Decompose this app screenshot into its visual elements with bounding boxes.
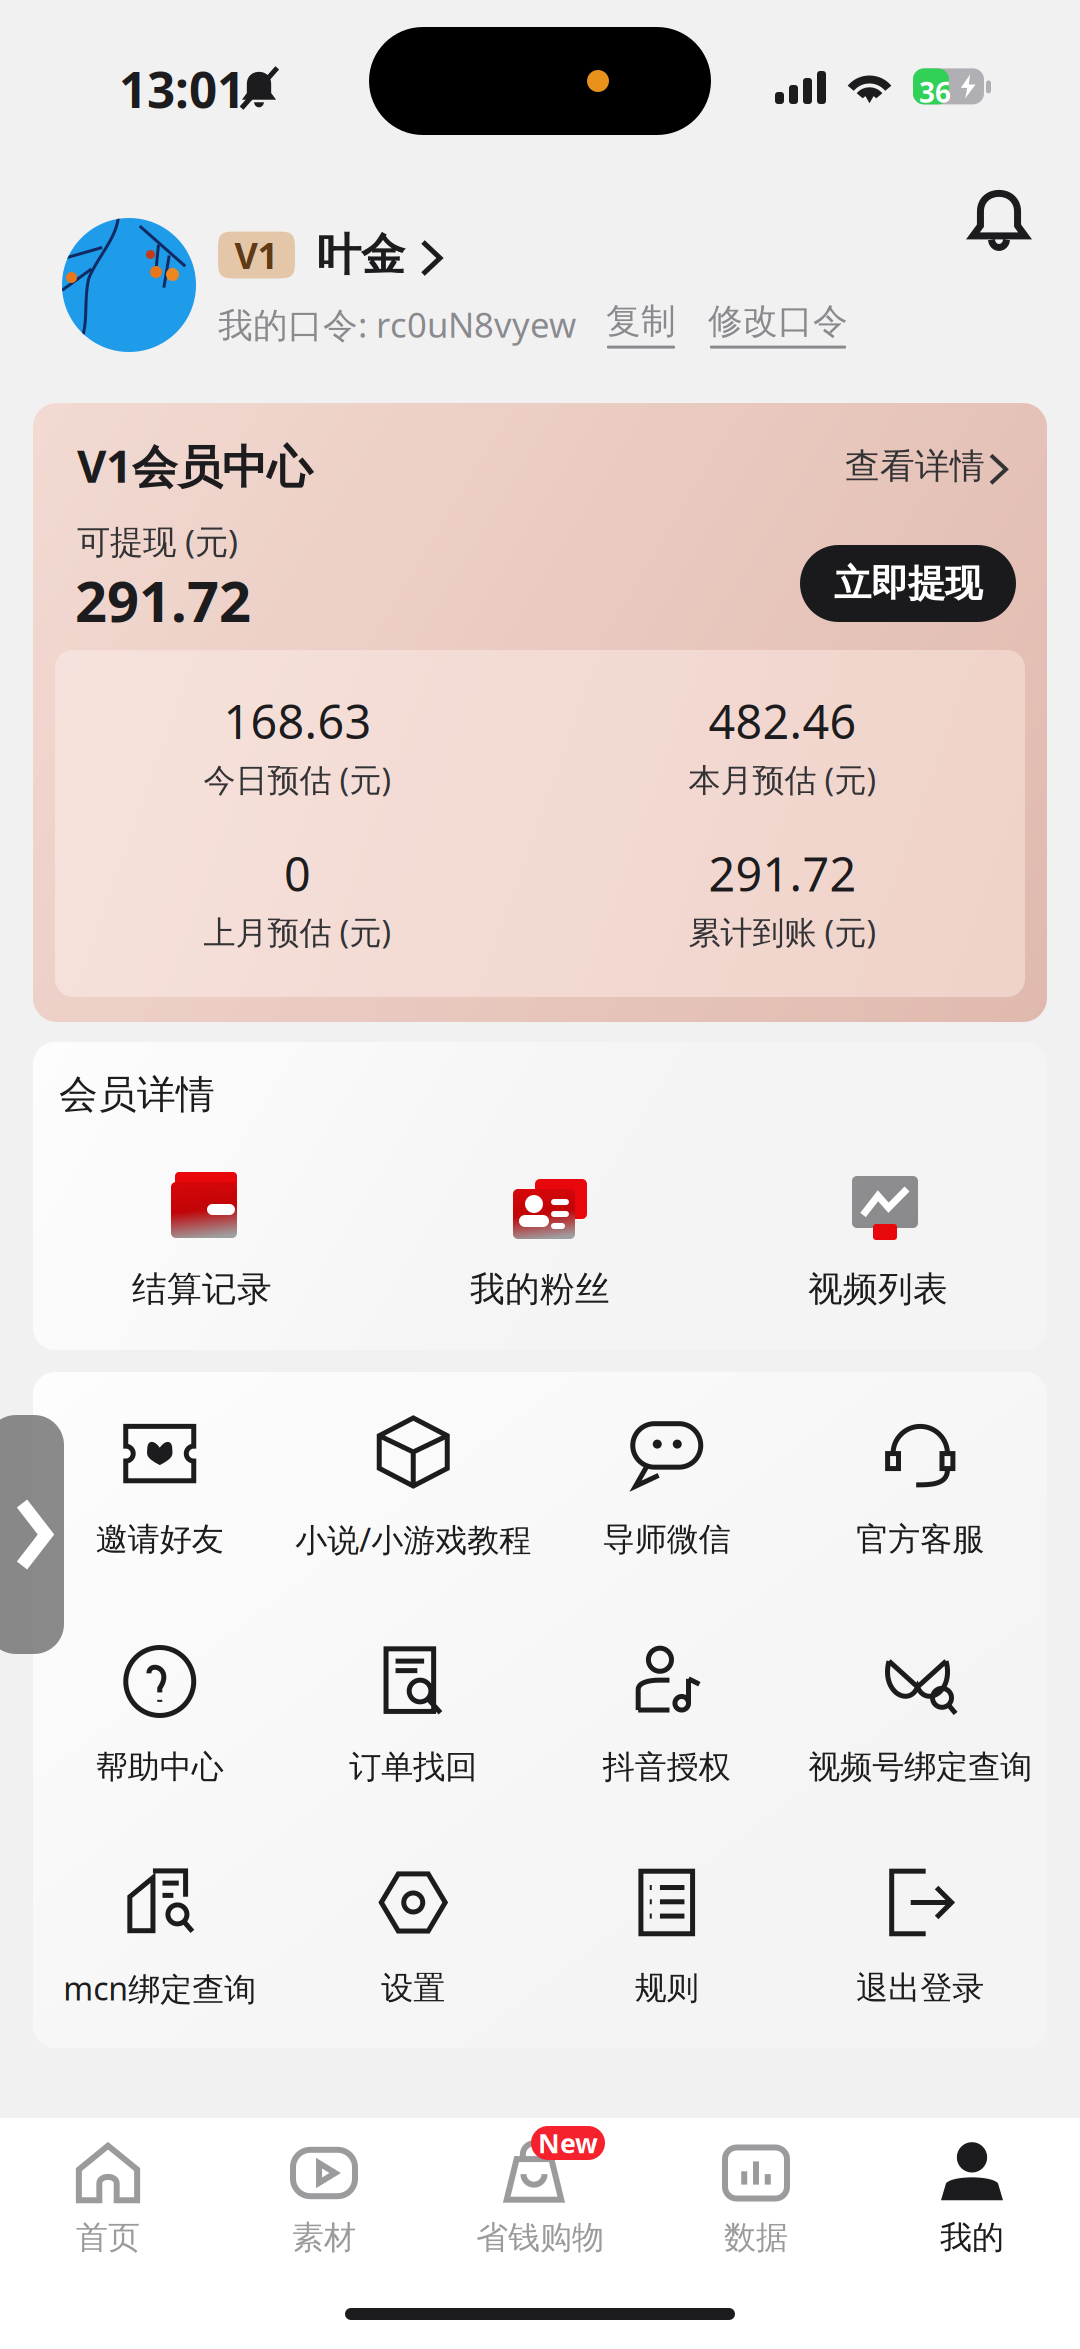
button[interactable]: 复制 [606,300,676,349]
staticText: 我的粉丝 [470,1268,610,1311]
button[interactable]: 官方客服 [793,1420,1047,1559]
staticText: 我的 [940,2218,1004,2257]
button[interactable]: 结算记录 [33,1160,371,1311]
staticText: 168.63 [223,690,371,752]
button[interactable]: 首页 [0,2144,216,2257]
staticText: 退出登录 [856,1968,984,2008]
staticText: 修改口令 [708,300,848,343]
button[interactable]: 设置 [286,1868,540,2008]
button[interactable]: 抖音授权 [540,1647,793,1787]
staticText: 上月预估 (元) [203,910,391,953]
staticText: 官方客服 [856,1520,984,1559]
staticText: 订单找回 [349,1747,477,1787]
button[interactable]: 立即提现 [800,545,1016,622]
button[interactable]: New [432,2144,648,2257]
staticText: 0 [284,842,311,904]
staticText: 36 [919,73,951,111]
staticText: 数据 [724,2218,788,2257]
button[interactable]: 邀请好友 [33,1420,286,1559]
staticText: 设置 [381,1968,445,2008]
staticText: 帮助中心 [96,1747,224,1787]
staticText: 会员详情 [59,1071,215,1118]
staticText: V1 [234,231,278,279]
staticText: 导师微信 [603,1520,731,1559]
staticText: 规则 [635,1968,699,2008]
button[interactable]: 数据 [648,2144,864,2257]
staticText: 抖音授权 [603,1747,731,1787]
button[interactable]: 退出登录 [793,1868,1047,2008]
staticText: 可提现 (元) [77,519,238,563]
button[interactable]: 帮助中心 [33,1647,286,1787]
button[interactable]: Open side panel [0,1415,64,1654]
staticText: 邀请好友 [96,1520,224,1559]
staticText: 视频号绑定查询 [808,1747,1032,1787]
button[interactable]: Notifications [970,186,1028,250]
button[interactable]: 我的粉丝 [371,1160,709,1311]
button[interactable]: mcn绑定查询 [33,1867,286,2009]
staticText: 立即提现 [834,561,982,606]
staticText: 291.72 [708,842,856,904]
button[interactable]: 规则 [540,1868,793,2008]
staticText: New [538,2125,598,2161]
button[interactable]: 修改口令 [708,300,848,349]
staticText: 今日预估 (元) [203,758,391,800]
button[interactable]: 导师微信 [540,1420,793,1559]
button[interactable]: 小说/小游戏教程 [286,1418,540,1560]
staticText: 查看详情 [845,445,985,488]
button[interactable]: 订单找回 [286,1647,540,1787]
button[interactable]: V1 [218,228,444,282]
button[interactable]: 我的 [864,2144,1080,2257]
staticText: 小说/小游戏教程 [295,1518,531,1560]
staticText: 本月预估 (元) [688,758,876,800]
staticText: 结算记录 [132,1268,272,1311]
staticText: 首页 [76,2218,140,2257]
button[interactable]: 视频号绑定查询 [793,1647,1047,1787]
staticText: 482.46 [708,690,856,752]
staticText: 省钱购物 [476,2218,604,2257]
staticText: 累计到账 (元) [688,910,876,953]
button[interactable]: 视频列表 [709,1160,1047,1311]
staticText: 视频列表 [808,1268,948,1311]
staticText: mcn绑定查询 [63,1967,256,2009]
staticText: 叶金 [317,228,405,282]
staticText: 291.72 [75,563,251,637]
staticText: 复制 [606,300,676,343]
button[interactable]: 素材 [216,2144,432,2257]
staticText: 我的口令: rc0uN8vyew [218,301,576,347]
staticText: 素材 [292,2218,356,2257]
button[interactable]: Profile photo [62,218,196,352]
button[interactable]: 查看详情 [845,445,1006,488]
staticText: 13:01 [119,56,245,121]
staticText: V1会员中心 [77,435,312,495]
